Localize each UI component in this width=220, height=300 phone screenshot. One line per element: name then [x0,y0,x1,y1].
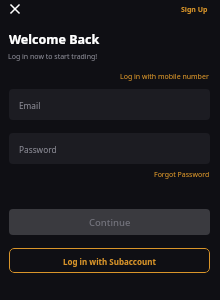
staticText: Welcome Back [9,31,100,48]
button[interactable]: Close [3,0,27,21]
staticText: Log in with Subaccount [63,256,156,267]
staticText: Log in now to start trading! [8,52,98,62]
button[interactable]: Sign Up [181,5,208,15]
staticText: Forgot Password [154,170,210,180]
staticText: Password [19,144,57,155]
button[interactable]: Continue [9,209,210,235]
button[interactable]: Email [9,89,210,120]
button[interactable]: Log in with Subaccount [9,248,210,273]
staticText: Sign Up [181,5,208,15]
staticText: Email [19,100,41,111]
staticText: Continue [89,216,131,229]
button[interactable]: Forgot Password [154,170,210,180]
staticText: Log in with mobile number [120,72,209,82]
button[interactable]: Password [9,133,210,164]
button[interactable]: Log in with mobile number [120,72,209,82]
